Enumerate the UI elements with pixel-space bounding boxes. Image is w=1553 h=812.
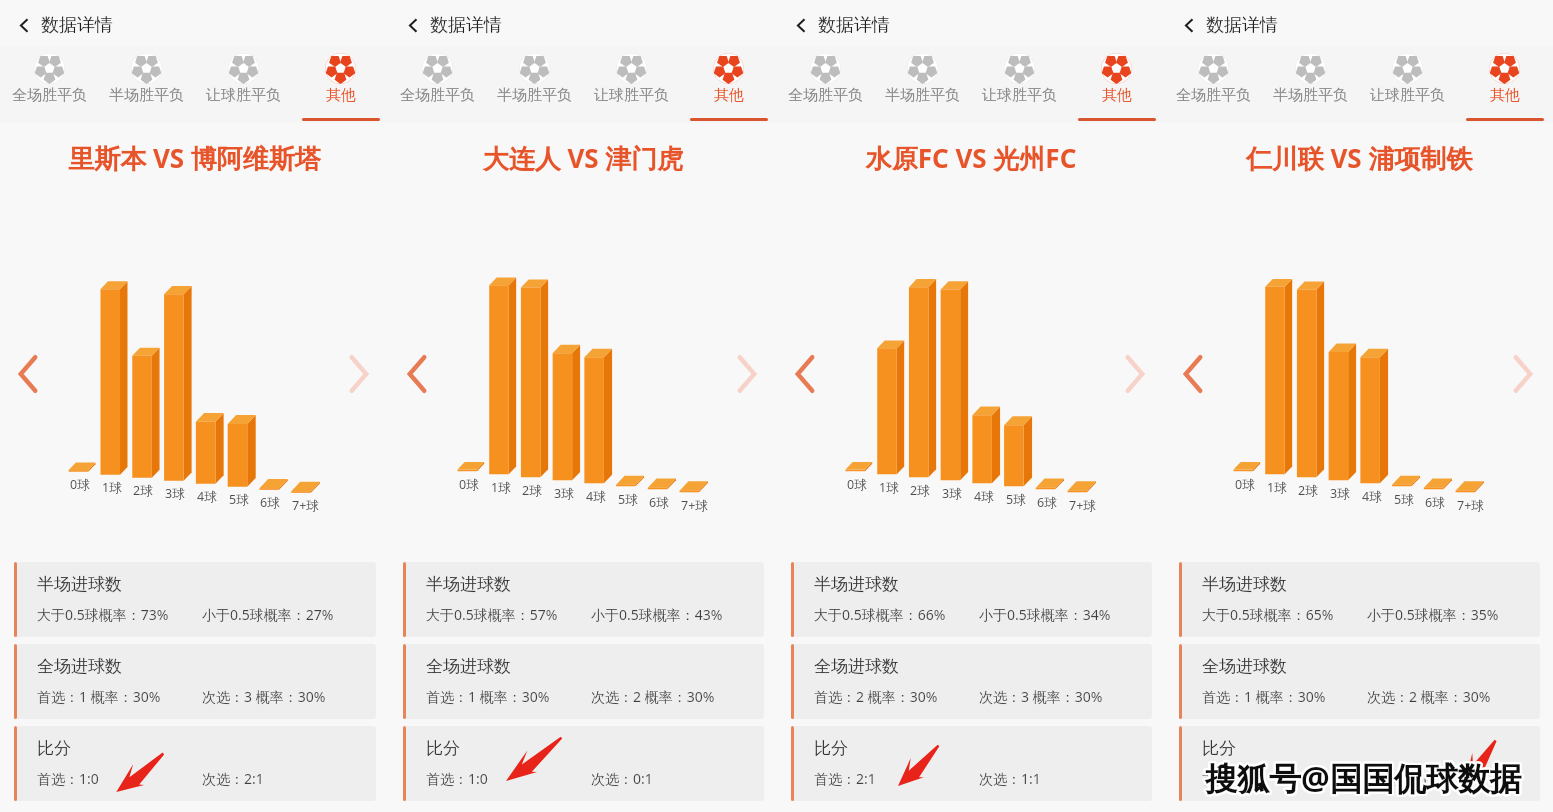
staticText: 半场进球数 — [37, 574, 122, 595]
staticText: 6球 — [260, 494, 280, 511]
button[interactable]: 半场胜平负 — [486, 46, 583, 123]
button[interactable]: 比分 — [791, 726, 1152, 801]
button[interactable]: Back — [1182, 14, 1278, 37]
button[interactable]: Next — [733, 353, 761, 395]
button[interactable]: 让球胜平负 — [971, 46, 1068, 123]
staticText: 7+球 — [1457, 497, 1484, 514]
staticText: 搜狐号@国国侃球数据 — [1205, 755, 1522, 799]
button[interactable]: Next — [1121, 353, 1149, 395]
button[interactable]: Previous — [1179, 353, 1207, 395]
staticText: 首选：1:0 — [1202, 769, 1264, 788]
button[interactable]: Previous — [14, 353, 42, 395]
staticText: 1球 — [879, 479, 899, 496]
button[interactable]: Previous — [791, 353, 819, 395]
staticText: 3球 — [1330, 485, 1350, 502]
button[interactable]: 半场进球数 — [791, 562, 1152, 637]
button[interactable]: Back — [406, 14, 502, 37]
staticText: 1球 — [491, 479, 511, 496]
button[interactable]: 全场进球数 — [791, 644, 1152, 719]
button[interactable]: 比分 — [14, 726, 376, 801]
button[interactable]: 半场进球数 — [1179, 562, 1540, 637]
staticText: 5球 — [229, 491, 249, 508]
staticText: 全场进球数 — [426, 656, 511, 677]
button[interactable]: 全场胜平负 — [0, 46, 98, 123]
staticText: 2球 — [1298, 482, 1318, 499]
staticText: 首选：1:0 — [426, 769, 488, 788]
button[interactable]: 其他 — [292, 46, 389, 123]
staticText: 半场胜平负 — [109, 86, 184, 105]
staticText: 6球 — [1037, 494, 1057, 511]
button[interactable]: 全场进球数 — [14, 644, 376, 719]
button[interactable]: Back — [17, 14, 113, 37]
staticText: 搜狐号@国国侃球数据 — [1204, 754, 1521, 798]
staticText: 半场进球数 — [1202, 574, 1287, 595]
staticText: 半场进球数 — [426, 574, 511, 595]
button[interactable]: 让球胜平负 — [195, 46, 292, 123]
staticText: 次选：3 概率：30% — [979, 687, 1103, 706]
staticText: 4球 — [974, 488, 994, 505]
staticText: 比分 — [1202, 738, 1236, 759]
button[interactable]: 其他 — [1456, 46, 1553, 123]
staticText: 搜狐号@国国侃球数据 — [1206, 755, 1523, 799]
staticText: 7+球 — [292, 497, 319, 514]
button[interactable]: 全场胜平负 — [389, 46, 486, 123]
staticText: 让球胜平负 — [982, 86, 1057, 105]
button[interactable]: Next — [345, 353, 373, 395]
button[interactable]: Previous — [403, 353, 431, 395]
staticText: 首选：2:1 — [814, 769, 876, 788]
staticText: 大于0.5球概率：73% — [37, 605, 169, 624]
button[interactable]: 半场进球数 — [14, 562, 376, 637]
staticText: 大于0.5球概率：66% — [814, 605, 946, 624]
staticText: 小于0.5球概率：35% — [1367, 605, 1499, 624]
staticText: 搜狐号@国国侃球数据 — [1204, 755, 1521, 799]
button[interactable]: 半场胜平负 — [98, 46, 195, 123]
staticText: 仁川联 VS 浦项制铁 — [1165, 140, 1553, 176]
staticText: 搜狐号@国国侃球数据 — [1207, 755, 1524, 799]
staticText: 次选：2:1 — [1367, 769, 1429, 788]
staticText: 2球 — [522, 482, 542, 499]
staticText: 搜狐号@国国侃球数据 — [1206, 754, 1523, 798]
staticText: 首选：1 概率：30% — [1202, 687, 1326, 706]
staticText: 大连人 VS 津门虎 — [389, 140, 777, 176]
button[interactable]: 比分 — [1179, 726, 1540, 801]
staticText: 全场胜平负 — [788, 86, 863, 105]
button[interactable]: 让球胜平负 — [583, 46, 680, 123]
staticText: 搜狐号@国国侃球数据 — [1205, 756, 1522, 800]
staticText: 5球 — [618, 491, 638, 508]
staticText: 半场进球数 — [814, 574, 899, 595]
staticText: 数据详情 — [818, 14, 890, 37]
staticText: 7+球 — [1069, 497, 1096, 514]
staticText: 次选：2 概率：30% — [1367, 687, 1491, 706]
button[interactable]: 全场胜平负 — [1165, 46, 1262, 123]
button[interactable]: 让球胜平负 — [1359, 46, 1456, 123]
button[interactable]: 全场胜平负 — [777, 46, 874, 123]
staticText: 搜狐号@国国侃球数据 — [1205, 756, 1522, 800]
button[interactable]: 其他 — [680, 46, 777, 123]
staticText: 半场胜平负 — [1273, 86, 1348, 105]
staticText: 比分 — [814, 738, 848, 759]
button[interactable]: 其他 — [1068, 46, 1165, 123]
staticText: 让球胜平负 — [206, 86, 281, 105]
button[interactable]: 半场胜平负 — [874, 46, 971, 123]
staticText: 搜狐号@国国侃球数据 — [1206, 757, 1523, 801]
staticText: 其他 — [1490, 86, 1520, 105]
button[interactable]: 比分 — [403, 726, 764, 801]
staticText: 其他 — [326, 86, 356, 105]
staticText: 小于0.5球概率：43% — [591, 605, 723, 624]
staticText: 大于0.5球概率：65% — [1202, 605, 1334, 624]
button[interactable]: 半场胜平负 — [1262, 46, 1359, 123]
button[interactable]: 半场进球数 — [403, 562, 764, 637]
button[interactable]: Next — [1509, 353, 1537, 395]
staticText: 比分 — [426, 738, 460, 759]
button[interactable]: Back — [794, 14, 890, 37]
staticText: 次选：1:1 — [979, 769, 1041, 788]
button[interactable]: 全场进球数 — [1179, 644, 1540, 719]
staticText: 4球 — [586, 488, 606, 505]
staticText: 让球胜平负 — [594, 86, 669, 105]
staticText: 全场进球数 — [37, 656, 122, 677]
staticText: 搜狐号@国国侃球数据 — [1203, 757, 1520, 801]
button[interactable]: 全场进球数 — [403, 644, 764, 719]
staticText: 数据详情 — [430, 14, 502, 37]
staticText: 水原FC VS 光州FC — [777, 140, 1165, 176]
staticText: 搜狐号@国国侃球数据 — [1207, 756, 1524, 800]
